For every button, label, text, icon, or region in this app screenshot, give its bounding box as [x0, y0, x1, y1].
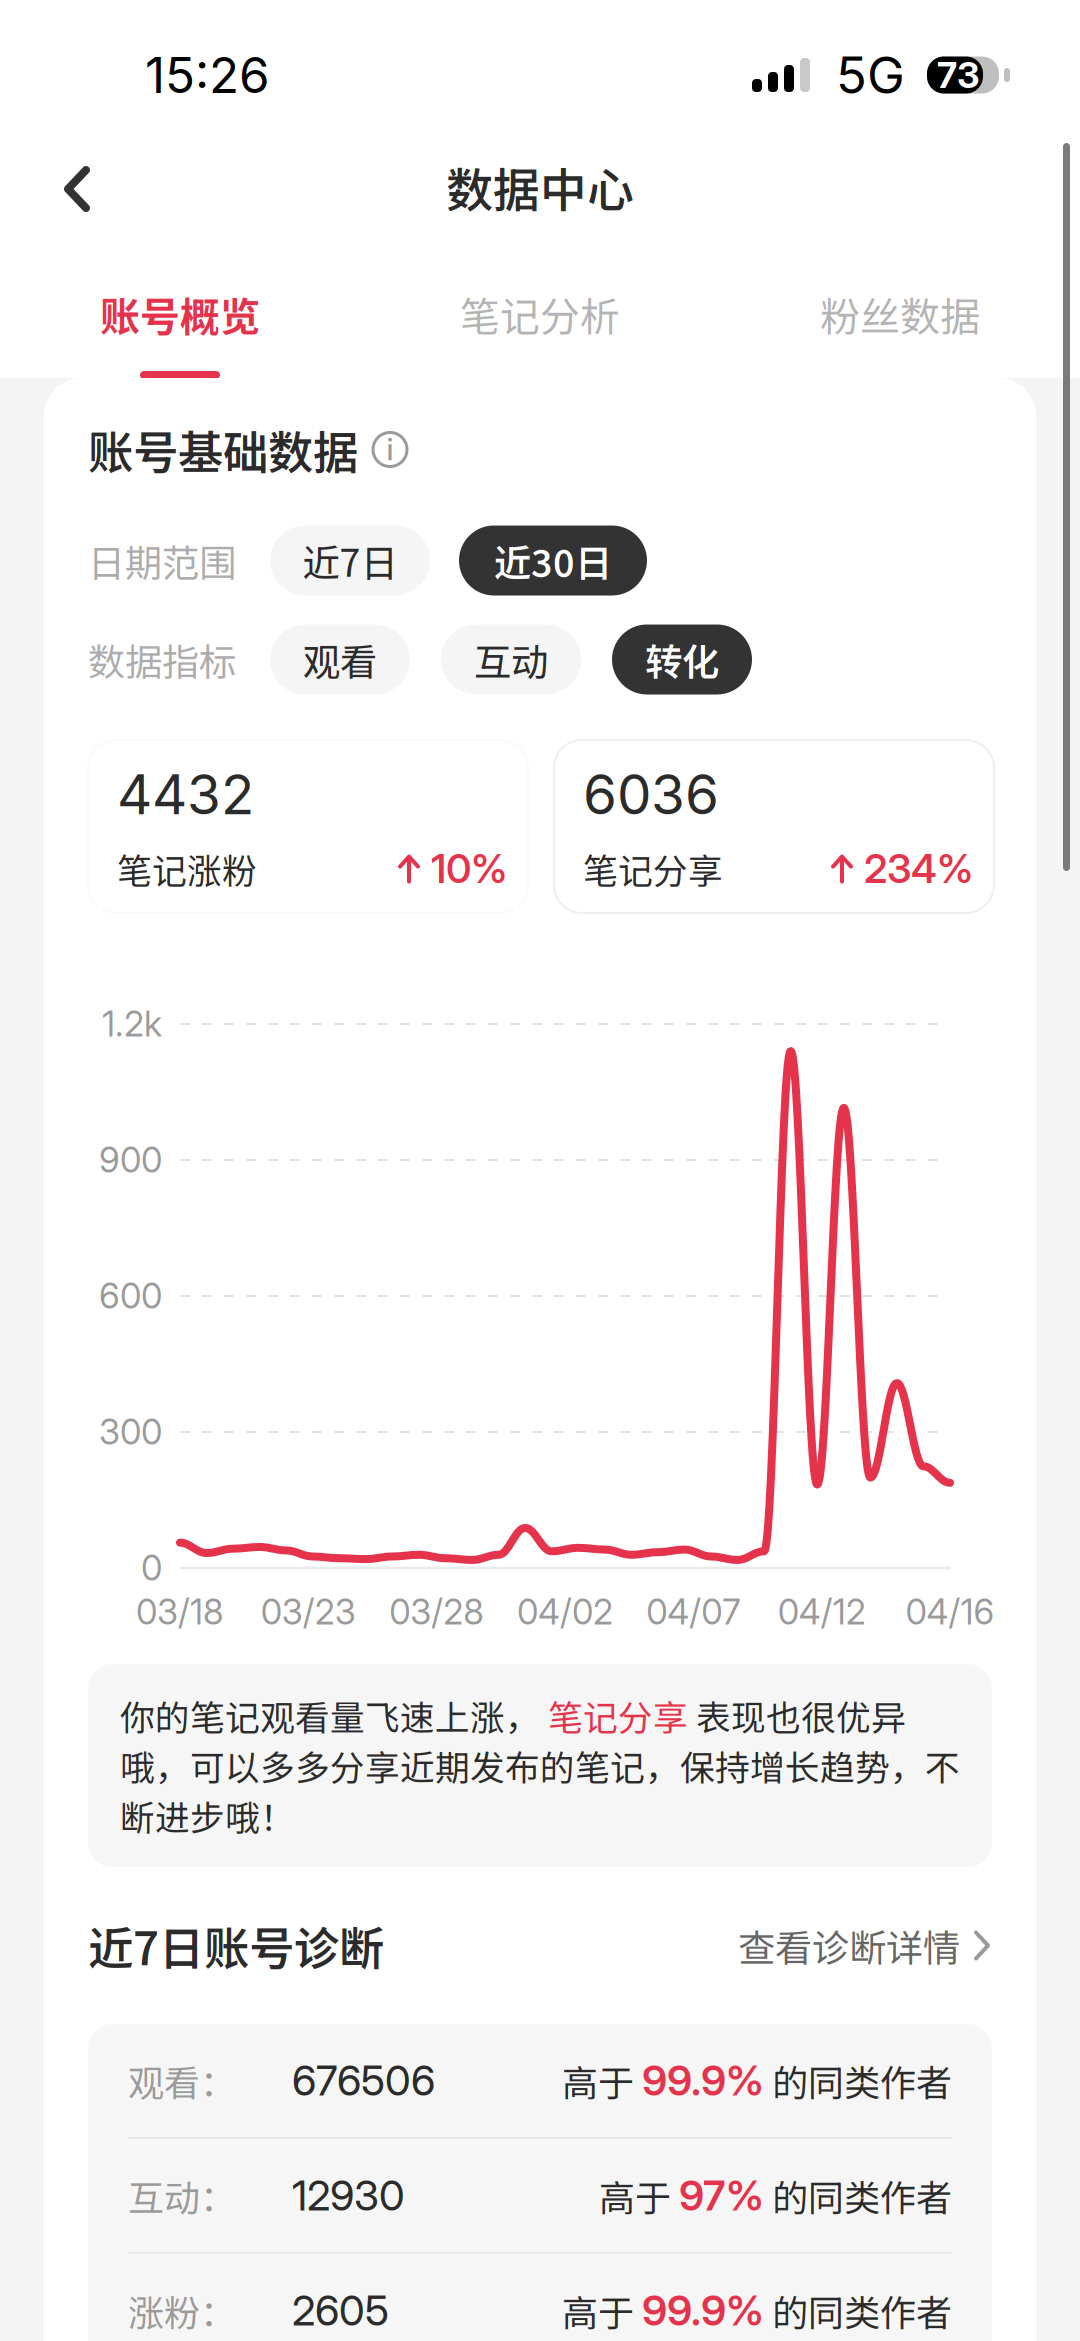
- staticText: i: [386, 432, 393, 467]
- button[interactable]: 观看: [270, 624, 410, 694]
- staticText: 查看诊断详情: [738, 1918, 960, 1973]
- staticText: 近7日账号诊断: [88, 1913, 384, 1978]
- staticText: 04/12: [778, 1591, 866, 1633]
- staticText: 03/18: [136, 1591, 224, 1633]
- staticText: 数据中心: [446, 153, 634, 221]
- staticText: 涨粉：: [128, 2284, 236, 2336]
- staticText: 的同类作者: [764, 2054, 952, 2106]
- staticText: 04/02: [517, 1591, 613, 1633]
- button[interactable]: 笔记分析: [360, 247, 720, 379]
- staticText: 你的笔记观看量飞速上涨， 笔记分享 表现也很优异哦，可以多多分享近期发布的笔记，…: [120, 1690, 960, 1841]
- button[interactable]: 账号概览: [0, 247, 360, 379]
- button[interactable]: 4432: [87, 739, 529, 914]
- staticText: 97%: [679, 2170, 764, 2220]
- staticText: 6036: [583, 761, 719, 827]
- staticText: 转化: [645, 632, 719, 687]
- staticText: 12930: [292, 2170, 405, 2220]
- staticText: 高于: [599, 2169, 679, 2221]
- staticText: 15:26: [145, 45, 270, 105]
- staticText: 73: [937, 53, 980, 97]
- button[interactable]: 查看诊断详情: [738, 1918, 992, 1973]
- staticText: 观看：: [128, 2054, 236, 2106]
- button[interactable]: 近7日: [270, 525, 430, 595]
- staticText: 近30日: [494, 533, 612, 588]
- staticText: 粉丝数据: [820, 285, 980, 343]
- staticText: 04/07: [646, 1591, 740, 1633]
- staticText: 近7日: [302, 533, 397, 588]
- staticText: 5G: [836, 44, 905, 106]
- staticText: 互动: [474, 632, 548, 687]
- staticText: 676506: [292, 2055, 435, 2105]
- button[interactable]: 6036: [553, 739, 995, 914]
- staticText: 互动：: [128, 2169, 236, 2221]
- staticText: 99.9%: [642, 2285, 764, 2335]
- staticText: 账号概览: [100, 285, 260, 343]
- staticText: 笔记分享: [583, 843, 723, 894]
- staticText: 4432: [117, 761, 254, 827]
- staticText: 0: [141, 1547, 162, 1589]
- button[interactable]: 近30日: [459, 525, 647, 595]
- staticText: 900: [99, 1139, 162, 1181]
- staticText: 笔记分析: [460, 285, 620, 343]
- staticText: 600: [99, 1275, 162, 1317]
- staticText: 账号基础数据: [88, 417, 358, 482]
- staticText: 的同类作者: [764, 2284, 952, 2336]
- button[interactable]: 粉丝数据: [720, 247, 1080, 379]
- staticText: 数据指标: [88, 632, 236, 687]
- button[interactable]: 转化: [612, 624, 752, 694]
- staticText: 观看: [303, 632, 377, 687]
- staticText: 03/23: [261, 1591, 356, 1633]
- button[interactable]: Back: [22, 130, 132, 248]
- staticText: 的同类作者: [764, 2169, 952, 2221]
- staticText: 日期范围: [88, 533, 236, 588]
- staticText: 高于: [562, 2054, 642, 2106]
- staticText: 1.2k: [102, 1003, 162, 1045]
- staticText: 300: [99, 1411, 162, 1453]
- staticText: 04/16: [905, 1591, 994, 1633]
- staticText: 2605: [292, 2285, 389, 2335]
- button[interactable]: 互动: [441, 624, 581, 694]
- staticText: 10%: [431, 844, 507, 893]
- staticText: 高于: [562, 2284, 642, 2336]
- staticText: 笔记涨粉: [117, 843, 257, 894]
- staticText: 99.9%: [642, 2055, 764, 2105]
- staticText: 03/28: [389, 1591, 484, 1633]
- staticText: 234%: [864, 844, 973, 893]
